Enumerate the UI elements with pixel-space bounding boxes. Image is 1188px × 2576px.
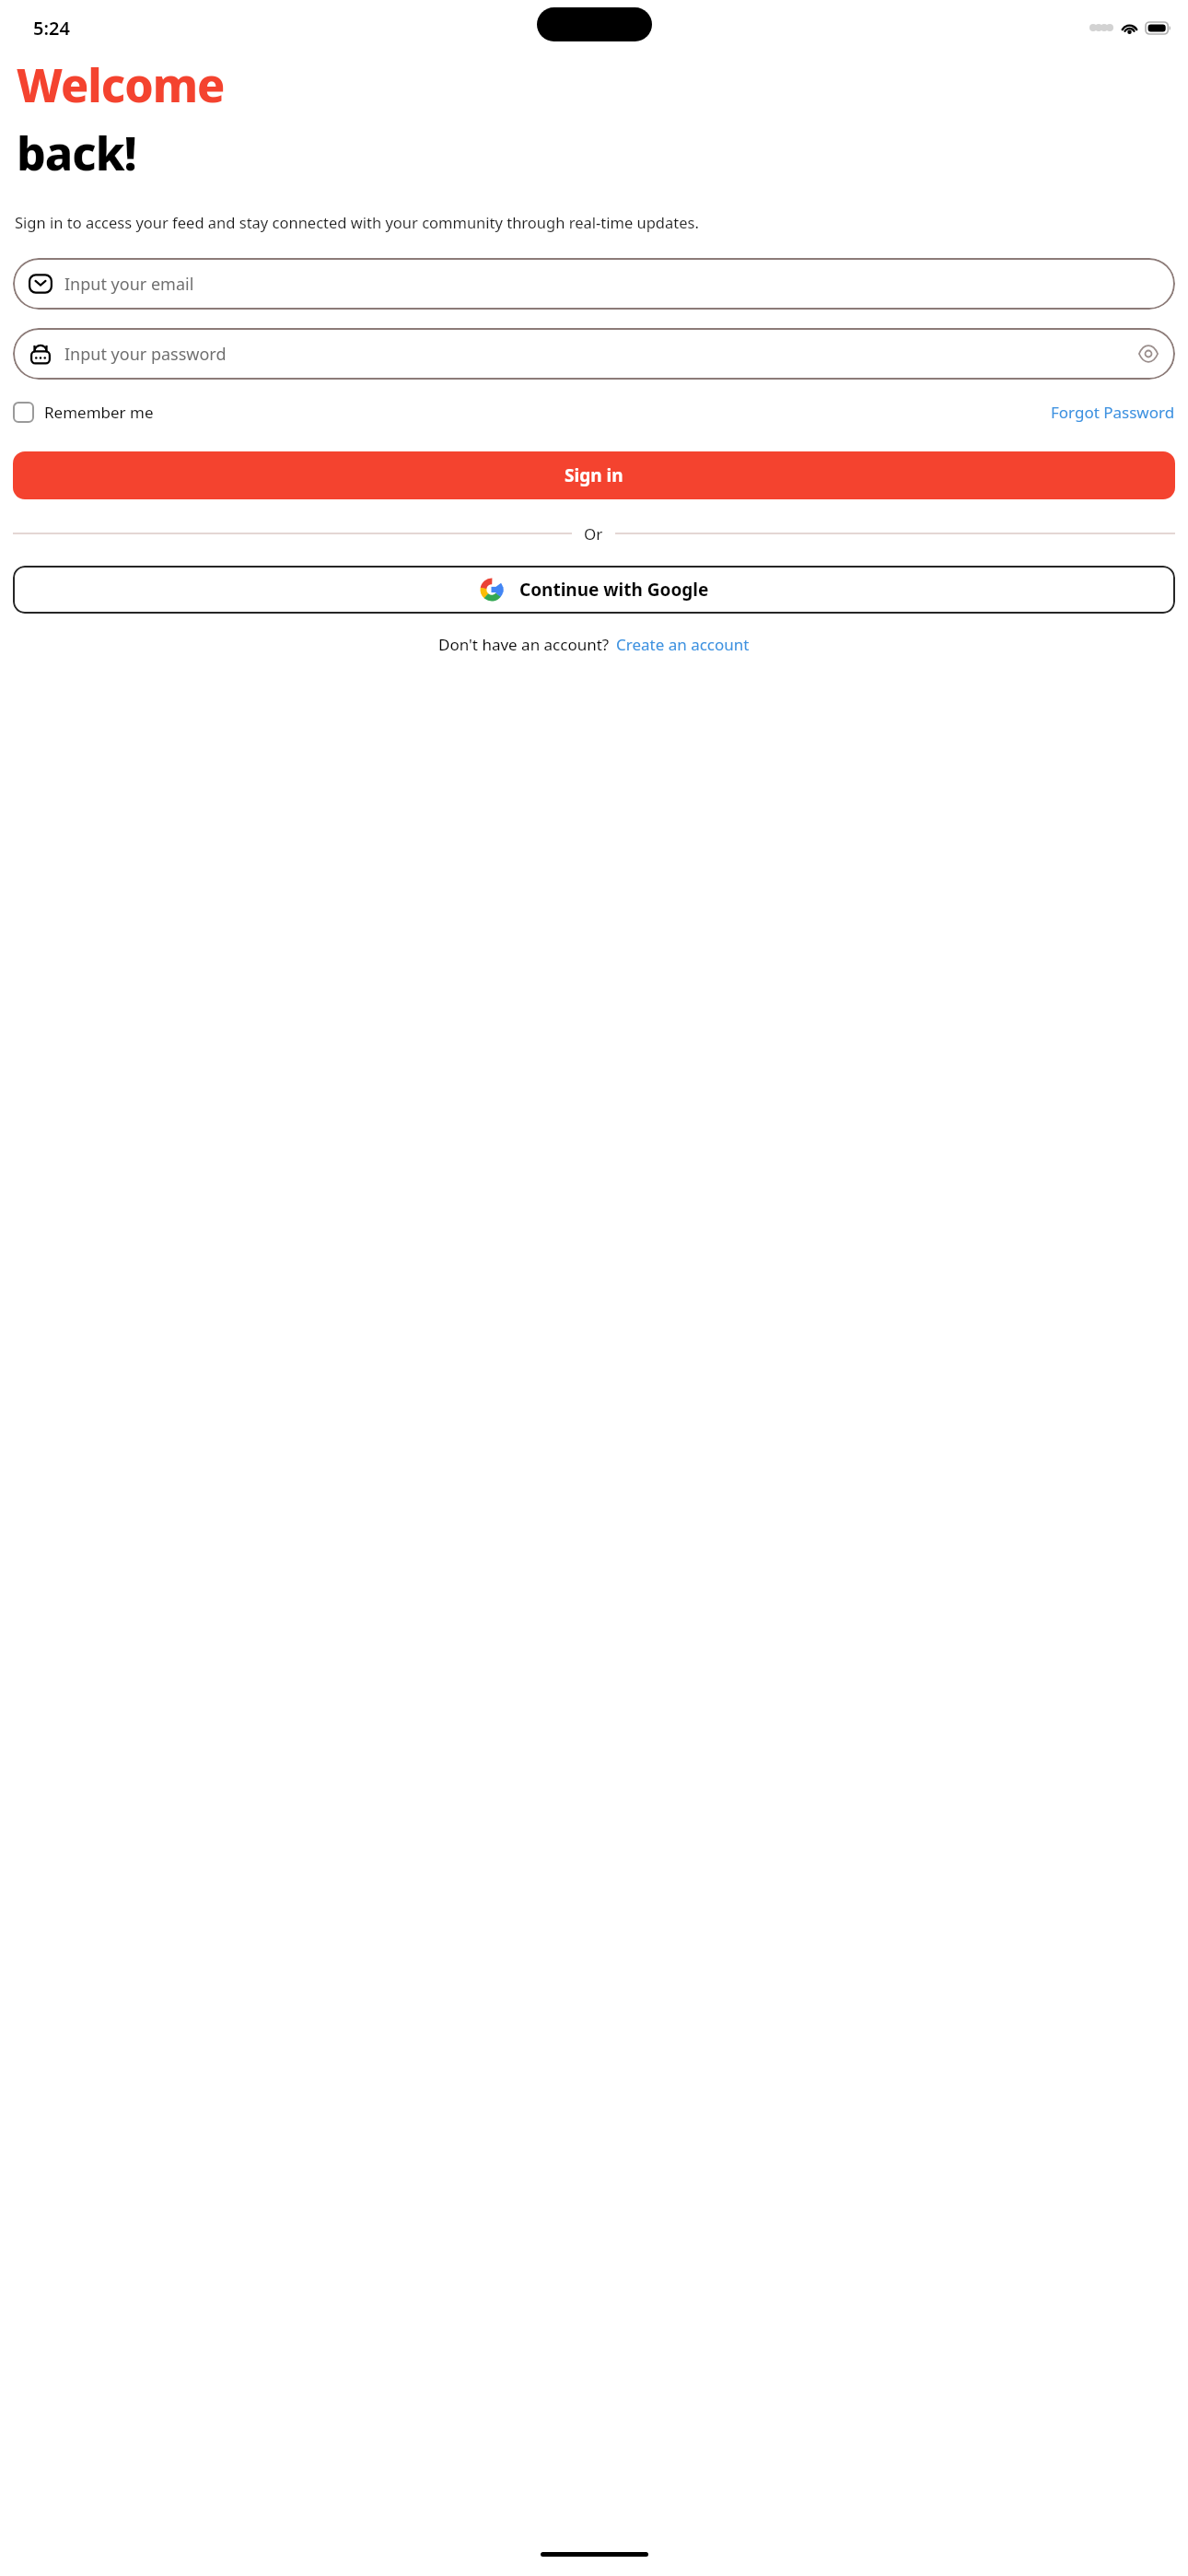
button[interactable]: Forgot Password <box>1051 402 1175 423</box>
staticText: 5:24 <box>33 16 70 41</box>
staticText: Input your email <box>64 273 1159 296</box>
staticText: Continue with Google <box>519 578 709 602</box>
staticText: Remember me <box>44 402 154 423</box>
staticText: Input your password <box>64 343 1137 366</box>
button[interactable]: Show password <box>1137 343 1159 365</box>
button[interactable]: Create an account <box>616 634 750 655</box>
staticText: Or <box>584 523 603 544</box>
staticText: Welcome <box>17 53 225 116</box>
button[interactable]: Sign in <box>13 451 1175 499</box>
button[interactable]: Email <box>13 258 1175 310</box>
other: Password <box>29 342 52 366</box>
staticText: back! <box>17 122 136 184</box>
staticText: Don't have an account? <box>438 634 610 655</box>
staticText: Sign in to access your feed and stay con… <box>15 212 699 232</box>
staticText: Sign in <box>565 463 623 487</box>
button[interactable]: Password <box>13 328 1175 380</box>
staticText: Create an account <box>616 634 750 655</box>
other: Email <box>29 272 52 296</box>
button[interactable]: Remember me <box>13 402 159 423</box>
staticText: Forgot Password <box>1051 402 1175 423</box>
button[interactable]: Continue with Google <box>13 566 1175 614</box>
